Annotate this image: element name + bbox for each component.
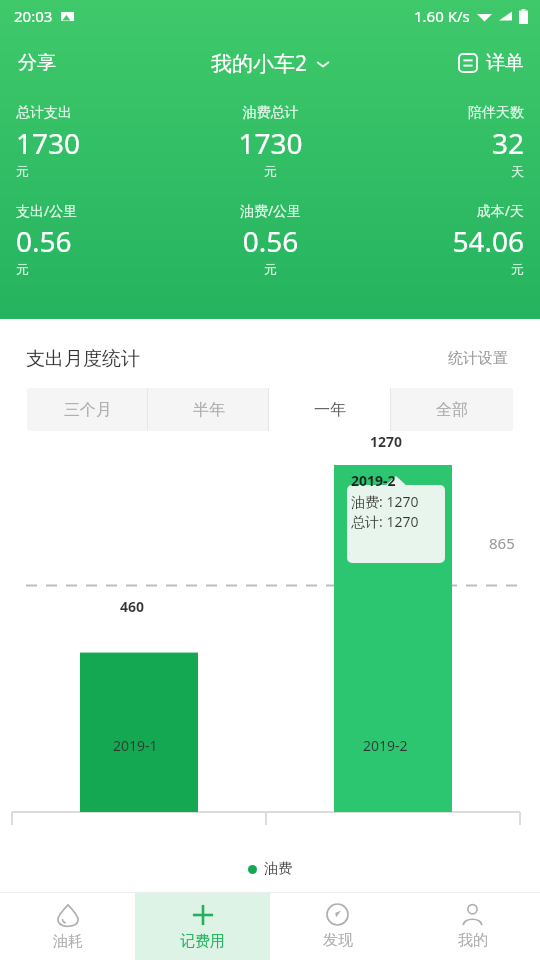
staticText: 一年 [314,400,346,420]
staticText: 2019-2 [363,736,408,755]
staticText: 元 [16,261,186,277]
button[interactable]: 油耗 [0,893,135,960]
staticText: 0.56 [16,222,186,260]
staticText: 32 [355,124,524,162]
button[interactable]: 统计设置 [442,343,514,374]
staticText: 0.56 [186,222,355,260]
staticText: 我的小车2 [211,49,308,78]
staticText: 54.06 [355,222,524,260]
staticText: 分享 [18,51,56,75]
button[interactable]: 记费用 [135,893,270,960]
staticText: 865 [489,533,515,553]
button[interactable]: 分享 [0,41,74,85]
staticText: 我的 [458,931,488,950]
button[interactable]: 我的小车2 [199,41,342,86]
staticText: 油耗 [53,932,83,951]
staticText: 1.60 K/s [414,6,470,26]
staticText: 统计设置 [448,349,508,368]
staticText: 1730 [16,124,186,162]
staticText: 元 [355,261,524,277]
staticText: 总计: 1270 [351,512,419,531]
button[interactable]: 详单 [444,41,540,85]
staticText: 460 [120,597,145,616]
staticText: 油费/公里 [186,201,355,220]
button[interactable]: 我的 [405,893,540,960]
staticText: 油费 [264,860,292,878]
staticText: 2019-1 [113,736,158,755]
staticText: 天 [355,163,524,179]
staticText: 陪伴天数 [355,104,524,122]
staticText: 总计支出 [16,104,186,122]
button[interactable]: 全部 [391,388,513,431]
staticText: 发现 [323,931,353,950]
staticText: 全部 [436,400,468,420]
button[interactable]: 半年 [148,388,269,431]
staticText: 油费总计 [186,104,355,122]
staticText: 元 [186,261,355,277]
staticText: 半年 [193,400,225,420]
staticText: 20:03 [14,6,53,26]
staticText: 1270 [370,432,403,451]
staticText: 三个月 [64,400,112,420]
staticText: 元 [16,163,186,179]
staticText: 1730 [186,124,355,162]
button[interactable]: 发现 [270,893,405,960]
staticText: 详单 [486,51,524,75]
staticText: 记费用 [180,932,225,951]
button[interactable]: 三个月 [27,388,148,431]
staticText: 成本/天 [355,201,524,220]
staticText: 元 [186,163,355,179]
staticText: 支出/公里 [16,201,186,220]
staticText: 2019-2 [351,471,396,490]
staticText: 油费: 1270 [351,492,419,511]
button[interactable]: 一年 [269,388,391,431]
staticText: 支出月度统计 [26,347,140,371]
